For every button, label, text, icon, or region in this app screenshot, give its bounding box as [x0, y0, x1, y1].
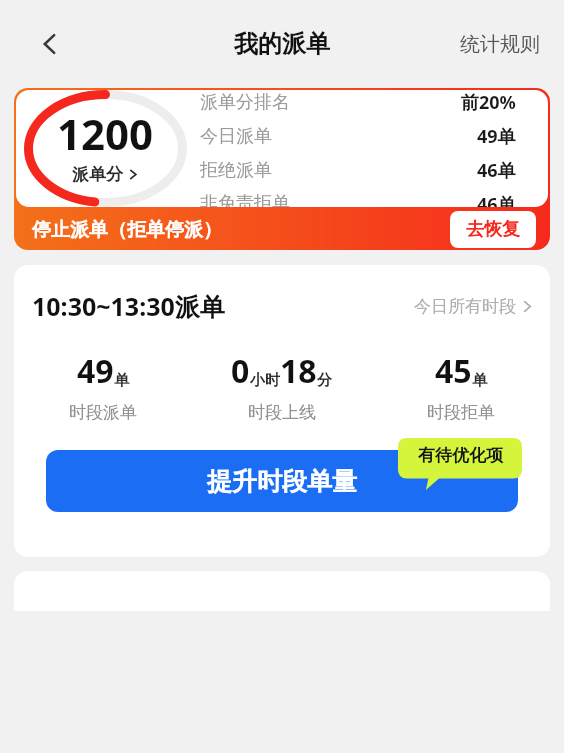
- staticText: 前20%: [461, 90, 516, 115]
- button[interactable]: 49: [14, 349, 192, 423]
- staticText: 我的派单: [234, 29, 330, 59]
- button[interactable]: 派单分排名: [200, 90, 516, 115]
- button[interactable]: Back: [26, 20, 74, 68]
- button[interactable]: 提升时段单量: [46, 450, 518, 512]
- button[interactable]: 45: [371, 349, 550, 423]
- staticText: 今日派单: [200, 125, 272, 148]
- staticText: 46单: [477, 192, 516, 207]
- staticText: 派单分: [72, 164, 123, 185]
- button[interactable]: 拒绝派单: [200, 158, 516, 183]
- staticText: 去恢复: [466, 218, 520, 241]
- button[interactable]: 1200: [16, 90, 194, 207]
- staticText: 停止派单（拒单停派）: [32, 218, 222, 242]
- staticText: 非免责拒单: [200, 192, 290, 207]
- button[interactable]: 统计规则: [452, 24, 548, 65]
- button[interactable]: 0: [192, 349, 371, 423]
- staticText: 单: [114, 371, 129, 390]
- staticText: 49单: [477, 124, 516, 149]
- staticText: 统计规则: [460, 32, 540, 57]
- button[interactable]: 非免责拒单: [200, 192, 516, 207]
- button[interactable]: 今日派单: [200, 124, 516, 149]
- staticText: 有待优化项: [418, 445, 503, 466]
- staticText: 拒绝派单: [200, 159, 272, 182]
- staticText: 46单: [477, 158, 516, 183]
- staticText: 时段拒单: [427, 402, 495, 423]
- staticText: 小时: [250, 371, 280, 390]
- staticText: 单: [472, 371, 487, 390]
- staticText: 派单分排名: [200, 91, 290, 114]
- staticText: 18: [280, 349, 317, 393]
- staticText: 今日所有时段: [414, 296, 516, 317]
- staticText: 时段上线: [248, 402, 316, 423]
- staticText: 45: [435, 349, 472, 393]
- staticText: 0: [231, 349, 250, 393]
- staticText: 49: [77, 349, 114, 393]
- staticText: 1200: [57, 105, 154, 162]
- button[interactable]: 去恢复: [450, 211, 536, 248]
- staticText: 分: [317, 371, 332, 390]
- staticText: 时段派单: [69, 402, 137, 423]
- staticText: 提升时段单量: [207, 466, 357, 497]
- staticText: 10:30~13:30派单: [32, 289, 225, 323]
- button[interactable]: 今日所有时段: [414, 296, 534, 317]
